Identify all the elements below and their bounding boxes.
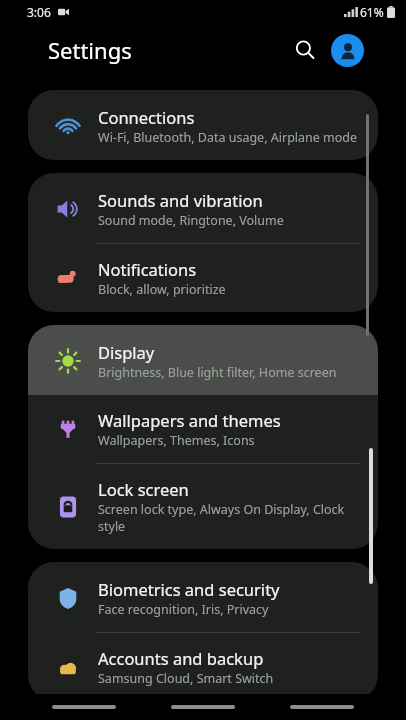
button[interactable]: Home <box>168 696 238 718</box>
staticText: Sounds and vibration <box>98 189 263 211</box>
staticText: Brightness, Blue light filter, Home scre… <box>98 364 337 381</box>
button[interactable]: Accounts and backup <box>28 633 378 701</box>
staticText: Biometrics and security <box>98 578 280 600</box>
staticText: Lock screen <box>98 478 189 500</box>
button[interactable]: Lock screen <box>28 464 378 549</box>
staticText: Screen lock type, Always On Display, Clo… <box>98 501 360 535</box>
staticText: Settings <box>48 35 132 65</box>
button[interactable]: Back <box>287 696 357 718</box>
button[interactable]: Wallpapers and themes <box>28 395 378 463</box>
button[interactable]: Account <box>331 34 364 67</box>
staticText: Samsung Cloud, Smart Switch <box>98 670 274 687</box>
button[interactable]: Connections <box>28 90 378 160</box>
staticText: Wallpapers and themes <box>98 409 281 431</box>
staticText: Wallpapers, Themes, Icons <box>98 432 255 449</box>
staticText: 61% <box>360 4 384 20</box>
staticText: Display <box>98 341 155 363</box>
staticText: 3:06 <box>27 4 51 20</box>
staticText: Accounts and backup <box>98 647 264 669</box>
staticText: Connections <box>98 106 195 128</box>
staticText: Sound mode, Ringtone, Volume <box>98 212 284 229</box>
button[interactable]: Sounds and vibration <box>28 173 378 243</box>
button[interactable]: Display <box>28 325 378 395</box>
button[interactable]: Search <box>287 32 323 68</box>
staticText: Wi-Fi, Bluetooth, Data usage, Airplane m… <box>98 129 358 146</box>
staticText: Block, allow, prioritize <box>98 281 226 298</box>
button[interactable]: Biometrics and security <box>28 562 378 632</box>
staticText: Notifications <box>98 258 197 280</box>
button[interactable]: Recents <box>49 696 119 718</box>
button[interactable]: Notifications <box>28 244 378 312</box>
staticText: Face recognition, Iris, Privacy <box>98 601 269 618</box>
